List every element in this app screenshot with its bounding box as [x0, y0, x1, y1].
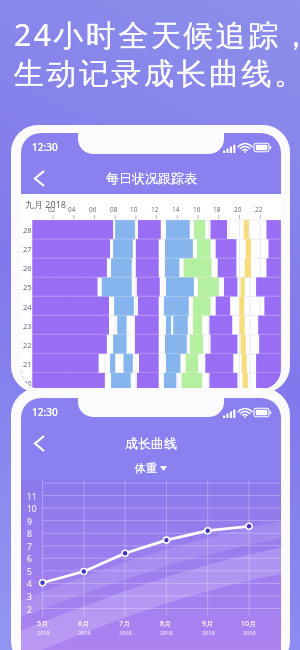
staticText: 6: [27, 553, 32, 565]
staticText: 2018: [119, 629, 132, 636]
staticText: 3: [27, 591, 32, 603]
staticText: 11: [27, 491, 37, 503]
staticText: 22: [23, 340, 32, 350]
staticText: 06: [89, 205, 97, 214]
staticText: 4: [27, 578, 32, 590]
staticText: 20: [23, 378, 32, 388]
staticText: 9月: [202, 619, 214, 629]
staticText: 每日状况跟踪表: [106, 170, 197, 186]
staticText: 2018: [78, 629, 91, 636]
staticText: 2018: [202, 629, 215, 636]
staticText: 27: [23, 244, 32, 254]
staticText: 7月: [119, 619, 131, 629]
button[interactable]: 体重: [21, 459, 281, 477]
staticText: 8: [27, 528, 32, 540]
staticText: 2018: [37, 629, 50, 636]
staticText: 21: [23, 359, 32, 369]
staticText: 生动记录成长曲线。: [14, 55, 300, 93]
staticText: 10: [130, 205, 138, 214]
staticText: 成长曲线: [125, 435, 177, 451]
staticText: 02: [48, 205, 56, 214]
staticText: 18: [213, 205, 221, 214]
staticText: 04: [68, 205, 76, 214]
staticText: 23: [23, 321, 32, 331]
staticText: 24: [23, 302, 32, 312]
staticText: 7: [27, 541, 32, 553]
staticText: 12:30: [32, 140, 58, 154]
staticText: 08: [110, 205, 118, 214]
staticText: 22: [255, 205, 263, 214]
staticText: 12:30: [32, 405, 58, 419]
button[interactable]: Back: [24, 163, 54, 193]
staticText: 20: [234, 205, 242, 214]
staticText: 5: [27, 566, 32, 578]
staticText: 25: [23, 282, 32, 292]
staticText: 9: [27, 516, 32, 528]
staticText: 8月: [160, 619, 172, 629]
staticText: 2: [27, 604, 32, 616]
staticText: 24小时全天候追踪，: [14, 14, 300, 55]
staticText: 16: [193, 205, 201, 214]
button[interactable]: Back: [24, 428, 54, 458]
staticText: 2018: [243, 629, 256, 636]
staticText: 10月: [241, 619, 257, 629]
staticText: 6月: [78, 619, 90, 629]
staticText: 28: [23, 225, 32, 235]
staticText: 体重: [135, 461, 157, 475]
staticText: 九月 2018: [25, 198, 66, 210]
staticText: 26: [23, 263, 32, 273]
staticText: 12: [151, 205, 159, 214]
staticText: 5月: [37, 619, 49, 629]
staticText: 14: [172, 205, 180, 214]
staticText: 10: [27, 503, 37, 515]
staticText: 2018: [160, 629, 173, 636]
